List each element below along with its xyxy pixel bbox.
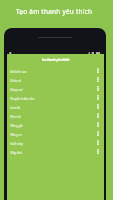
button[interactable]: More options [94, 120, 101, 129]
button[interactable]: More options [94, 102, 101, 111]
staticText: Tiếng ve [10, 132, 94, 136]
staticText: Nhịp thở [10, 150, 94, 154]
staticText: Tạo âm thanh yêu thích [16, 7, 93, 16]
button[interactable]: Lò sưởi [7, 102, 104, 111]
button[interactable]: Thuyền buồm êm [7, 93, 104, 102]
button[interactable]: More options [94, 66, 101, 75]
button[interactable]: More options [94, 93, 101, 102]
button[interactable]: More options [94, 138, 101, 147]
button[interactable]: Mưa rơi [7, 75, 104, 84]
staticText: Gió trên cao [10, 69, 94, 73]
button[interactable]: Tiếng gió [7, 120, 104, 129]
button[interactable]: More options [94, 75, 101, 84]
button[interactable]: Gió trên cao [7, 66, 104, 75]
staticText: Tiếng gió [10, 123, 94, 127]
button[interactable]: Đêm hè [7, 111, 104, 120]
staticText: âm thanh yêu thích [42, 58, 70, 62]
staticText: Sóng mơ [10, 87, 94, 91]
button[interactable]: Nhịp thở [7, 147, 104, 156]
button[interactable]: More options [94, 84, 101, 93]
button[interactable]: Suối chảy [7, 138, 104, 147]
staticText: Mưa rơi [10, 78, 94, 82]
button[interactable]: More options [94, 147, 101, 156]
staticText: Suối chảy [10, 141, 94, 145]
button[interactable]: More options [94, 111, 101, 120]
staticText: Thuyền buồm êm [10, 96, 94, 100]
button[interactable]: Tiếng ve [7, 129, 104, 138]
staticText: Lò sưởi [10, 105, 94, 109]
staticText: Đêm hè [10, 114, 94, 118]
button[interactable]: More options [94, 129, 101, 138]
button[interactable]: Sóng mơ [7, 84, 104, 93]
